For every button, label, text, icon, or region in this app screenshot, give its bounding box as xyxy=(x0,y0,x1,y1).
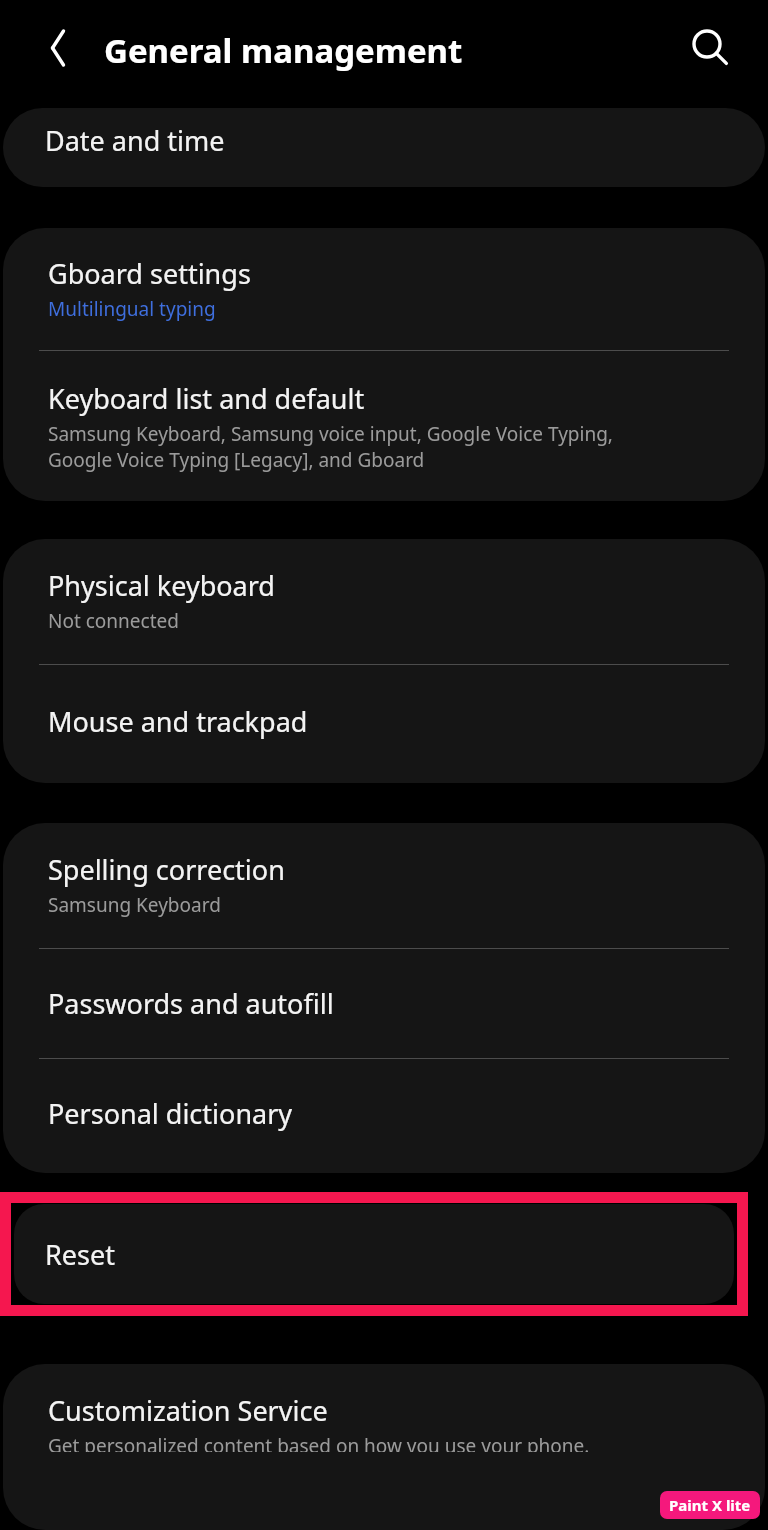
button[interactable]: Mouse and trackpad xyxy=(3,665,765,783)
staticText: Spelling correction xyxy=(48,851,285,888)
button[interactable]: Passwords and autofill xyxy=(3,949,765,1058)
staticText: Gboard settings xyxy=(48,255,251,292)
staticText: Date and time xyxy=(45,122,225,159)
button[interactable]: Keyboard list and default xyxy=(3,351,765,501)
staticText: Customization Service xyxy=(48,1392,328,1429)
staticText: Keyboard list and default xyxy=(48,380,365,417)
button[interactable]: Date and time xyxy=(3,108,765,187)
button[interactable]: Gboard settings xyxy=(3,228,765,350)
button[interactable]: Physical keyboard xyxy=(3,539,765,664)
staticText: Mouse and trackpad xyxy=(48,703,308,740)
button[interactable]: Spelling correction xyxy=(3,823,765,948)
staticText: Passwords and autofill xyxy=(48,985,334,1022)
button[interactable]: Search xyxy=(679,17,739,77)
staticText: Google Voice Typing [Legacy], and Gboard xyxy=(48,447,425,473)
staticText: Samsung Keyboard, Samsung voice input, G… xyxy=(48,421,613,447)
staticText: Not connected xyxy=(48,608,179,634)
staticText: Samsung Keyboard xyxy=(48,892,221,918)
staticText: Physical keyboard xyxy=(48,567,275,604)
staticText: Personal dictionary xyxy=(48,1095,293,1132)
button[interactable]: Back xyxy=(28,18,88,78)
staticText: Paint X lite xyxy=(669,1495,751,1515)
button[interactable]: Personal dictionary xyxy=(3,1059,765,1173)
staticText: Multilingual typing xyxy=(48,296,216,322)
button[interactable]: Customization Service xyxy=(3,1364,765,1530)
staticText: General management xyxy=(104,28,463,73)
staticText: Get personalized content based on how yo… xyxy=(48,1433,590,1452)
button[interactable]: Reset xyxy=(14,1204,734,1304)
staticText: Reset xyxy=(45,1236,115,1273)
